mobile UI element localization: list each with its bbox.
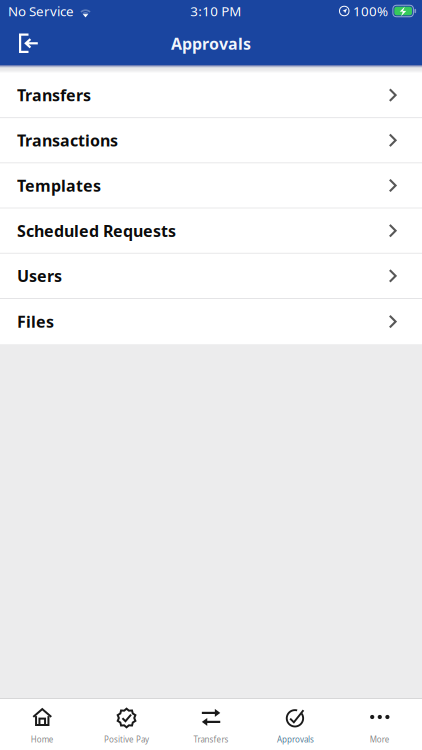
staticText: Scheduled Requests [17, 220, 176, 241]
staticText: Approvals [277, 734, 314, 745]
button[interactable]: Transactions [0, 118, 422, 163]
button[interactable]: Home [0, 699, 84, 750]
staticText: Users [17, 265, 62, 286]
button[interactable]: Transfers [169, 699, 253, 750]
staticText: More [370, 734, 390, 745]
button[interactable]: More [338, 699, 422, 750]
staticText: 3:10 PM [190, 2, 241, 20]
staticText: Positive Pay [104, 734, 149, 745]
button[interactable]: Users [0, 254, 422, 299]
staticText: No Service [8, 2, 74, 20]
staticText: Transactions [17, 130, 118, 151]
staticText: 100% [353, 2, 388, 20]
button[interactable]: Positive Pay [84, 699, 169, 750]
staticText: Home [31, 734, 54, 745]
staticText: Templates [17, 175, 101, 196]
button[interactable]: Sign out [0, 22, 53, 64]
staticText: Transfers [193, 734, 228, 745]
staticText: Transfers [17, 84, 91, 106]
staticText: Files [17, 311, 54, 332]
button[interactable]: Templates [0, 163, 422, 209]
button[interactable]: Transfers [0, 73, 422, 118]
button[interactable]: Scheduled Requests [0, 209, 422, 254]
button[interactable]: Files [0, 299, 422, 344]
staticText: Approvals [171, 33, 251, 54]
button[interactable]: Approvals [253, 699, 338, 750]
